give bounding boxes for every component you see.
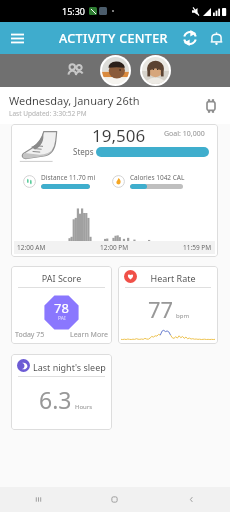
button[interactable]: PAI Score: [11, 266, 112, 344]
button[interactable]: Recents: [0, 487, 76, 512]
staticText: PAI Score: [11, 272, 112, 284]
staticText: Heart Rate: [138, 272, 208, 284]
staticText: Goal: 10,000: [164, 129, 205, 139]
button[interactable]: Device status: [199, 94, 223, 118]
staticText: 11:59 PM: [183, 243, 212, 252]
button[interactable]: Friend profile: [142, 57, 169, 84]
button[interactable]: Sync: [177, 22, 203, 54]
button[interactable]: Last night's sleep: [11, 354, 112, 430]
staticText: 6.3: [39, 384, 72, 415]
staticText: Hours: [75, 403, 93, 411]
staticText: Distance 11.70 mi: [41, 173, 96, 182]
staticText: 78: [54, 299, 69, 317]
staticText: 77: [148, 294, 174, 324]
button[interactable]: Friend profile: [102, 57, 129, 84]
button[interactable]: Notifications: [203, 22, 229, 54]
staticText: 15:30: [62, 5, 86, 17]
staticText: Last Updated: 3:30:52 PM: [9, 109, 87, 118]
staticText: Wednesday, January 26th: [9, 93, 140, 108]
button[interactable]: Friends: [60, 56, 90, 86]
button[interactable]: Home: [76, 487, 153, 512]
button[interactable]: Menu: [0, 22, 34, 54]
staticText: 19,506: [92, 124, 146, 146]
staticText: PAI: [58, 315, 66, 322]
button[interactable]: Heart Rate: [118, 266, 218, 344]
staticText: 12:00 AM: [17, 243, 46, 252]
staticText: Steps: [73, 146, 94, 157]
staticText: Calories 1042 CAL: [130, 173, 185, 182]
staticText: bpm: [176, 312, 189, 320]
staticText: 12:00 PM: [100, 243, 129, 252]
staticText: Today 75: [15, 330, 45, 340]
staticText: Learn More: [70, 330, 108, 340]
staticText: ACTIVITY CENTER: [59, 30, 168, 47]
button[interactable]: 19,506: [11, 124, 218, 257]
staticText: Last night's sleep: [33, 361, 106, 373]
